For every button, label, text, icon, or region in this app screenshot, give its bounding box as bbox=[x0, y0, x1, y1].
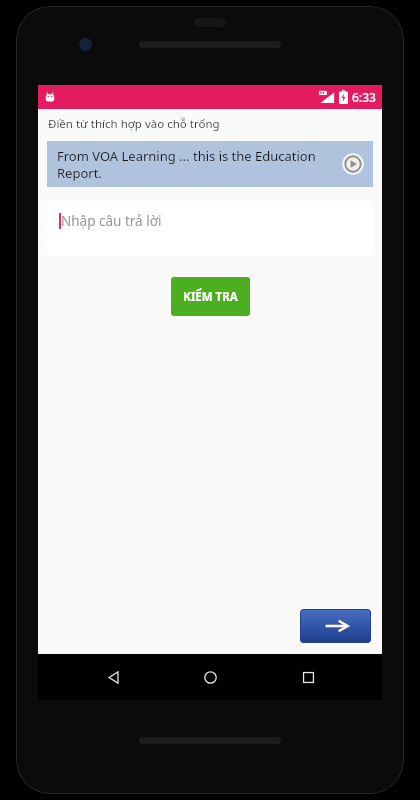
button[interactable]: Back bbox=[90, 654, 136, 700]
staticText: Nhập câu trả lời bbox=[61, 212, 162, 230]
button[interactable]: Play audio bbox=[342, 153, 364, 175]
staticText: Điền từ thích hợp vào chỗ trống bbox=[48, 116, 220, 132]
button[interactable]: Next bbox=[300, 609, 371, 643]
staticText: 6:33 bbox=[352, 89, 376, 105]
staticText: From VOA Learning ... this is the Educat… bbox=[57, 147, 329, 182]
button[interactable]: Nhập câu trả lời bbox=[47, 201, 373, 256]
button[interactable]: Home bbox=[187, 654, 233, 700]
button[interactable]: KIỂM TRA bbox=[171, 277, 250, 316]
button[interactable]: Recent apps bbox=[285, 654, 331, 700]
staticText: KIỂM TRA bbox=[183, 289, 238, 305]
button[interactable]: From VOA Learning ... this is the Educat… bbox=[47, 141, 373, 187]
